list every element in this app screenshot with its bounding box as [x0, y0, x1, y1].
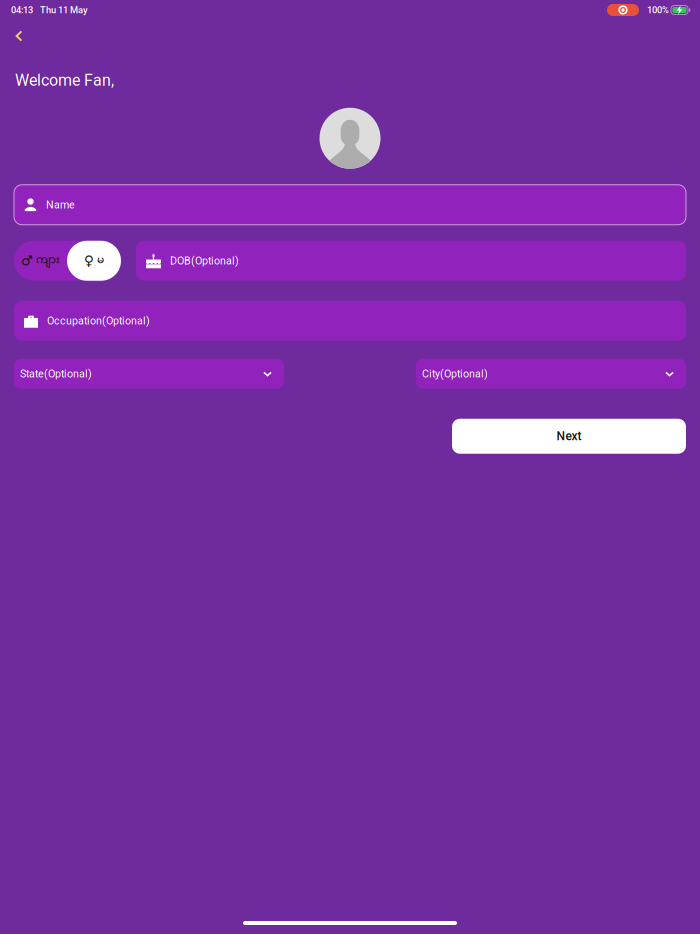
staticText: မ: [97, 249, 104, 272]
button[interactable]: DOB(Optional): [136, 241, 686, 281]
staticText: Thu 11 May: [40, 4, 88, 15]
staticText: ♀: [84, 253, 94, 268]
staticText: State(Optional): [20, 367, 92, 380]
staticText: Welcome Fan,: [15, 71, 114, 90]
staticText: ကျား: [36, 249, 60, 272]
staticText: DOB(Optional): [170, 254, 239, 267]
staticText: Occupation(Optional): [47, 314, 150, 327]
staticText: City(Optional): [422, 367, 488, 380]
staticText: Name: [46, 198, 75, 211]
staticText: 100%: [647, 4, 669, 15]
button[interactable]: Next: [452, 419, 686, 454]
button[interactable]: ♀: [67, 241, 121, 281]
staticText: Next: [556, 429, 581, 443]
button[interactable]: State(Optional): [14, 359, 284, 389]
staticText: 04:13: [11, 4, 33, 15]
button[interactable]: City(Optional): [416, 359, 686, 389]
button[interactable]: Name: [14, 185, 686, 225]
button[interactable]: Back: [6, 25, 32, 47]
button[interactable]: ♂: [14, 241, 67, 281]
staticText: ♂: [21, 253, 33, 268]
button[interactable]: Occupation(Optional): [14, 301, 686, 341]
